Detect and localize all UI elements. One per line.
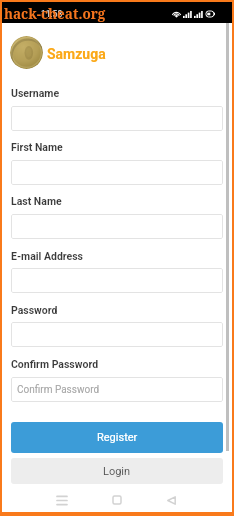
button[interactable]: Profile photo [10,36,43,69]
staticText: Confirm Password [17,384,100,396]
button[interactable]: Recent apps [45,487,79,513]
button[interactable]: Confirm Password [11,377,223,402]
button[interactable]: Register [11,422,223,453]
button[interactable] [11,322,223,347]
staticText: Confirm Password [11,358,99,370]
staticText: 11:58 [41,9,63,19]
staticText: Last Name [11,195,62,207]
staticText: Password [11,304,58,316]
button[interactable]: Home [100,487,134,513]
button[interactable] [11,268,223,293]
button[interactable] [11,160,223,185]
staticText: Samzuga [47,46,106,62]
staticText: E-mail Address [11,250,84,262]
staticText: Register [97,431,138,444]
button[interactable] [11,214,223,239]
button[interactable] [11,106,223,131]
button[interactable]: Back [154,487,188,513]
staticText: Login [103,465,131,478]
staticText: Username [11,87,60,99]
button[interactable]: Login [11,458,223,484]
staticText: hack-cheat.org [4,5,106,23]
staticText: First Name [11,141,63,153]
